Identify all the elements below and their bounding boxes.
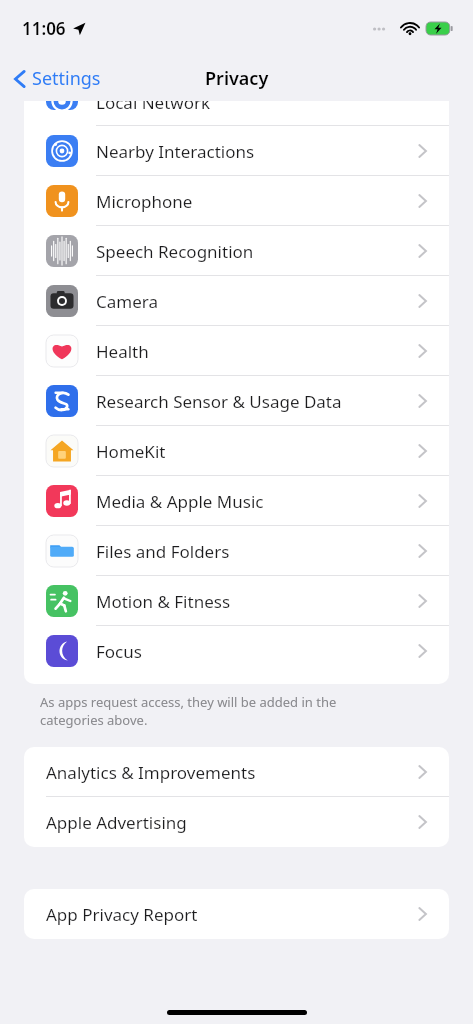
staticText: As apps request access, they will be add… [40,693,337,729]
button[interactable]: Apple Advertising [24,797,449,847]
button[interactable]: Nearby Interactions [24,126,449,176]
staticText: Privacy [205,66,269,91]
staticText: App Privacy Report [46,903,198,926]
staticText: Health [96,340,149,363]
staticText: Settings [32,66,101,91]
button[interactable]: Motion & Fitness [24,576,449,626]
button[interactable]: Camera [24,276,449,326]
button[interactable]: Settings [0,60,111,97]
staticText: Apple Advertising [46,811,187,834]
button[interactable]: Analytics & Improvements [24,747,449,797]
button[interactable]: Focus [24,626,449,676]
staticText: Focus [96,640,142,663]
staticText: Motion & Fitness [96,590,231,613]
staticText: Nearby Interactions [96,140,255,163]
staticText: Files and Folders [96,540,230,563]
button[interactable]: Research Sensor & Usage Data [24,376,449,426]
button[interactable]: HomeKit [24,426,449,476]
staticText: Media & Apple Music [96,490,264,513]
button[interactable]: Speech Recognition [24,226,449,276]
staticText: HomeKit [96,440,166,463]
staticText: Camera [96,290,158,313]
staticText: Research Sensor & Usage Data [96,390,342,413]
staticText: Speech Recognition [96,240,254,263]
staticText: Analytics & Improvements [46,761,256,784]
button[interactable]: Health [24,326,449,376]
button[interactable]: Files and Folders [24,526,449,576]
staticText: 11:06 [22,17,66,40]
button[interactable]: App Privacy Report [24,889,449,939]
staticText: Microphone [96,190,193,213]
staticText: Local Network [96,101,211,114]
button[interactable]: Local Network [24,101,449,126]
button[interactable]: Microphone [24,176,449,226]
button[interactable]: Media & Apple Music [24,476,449,526]
